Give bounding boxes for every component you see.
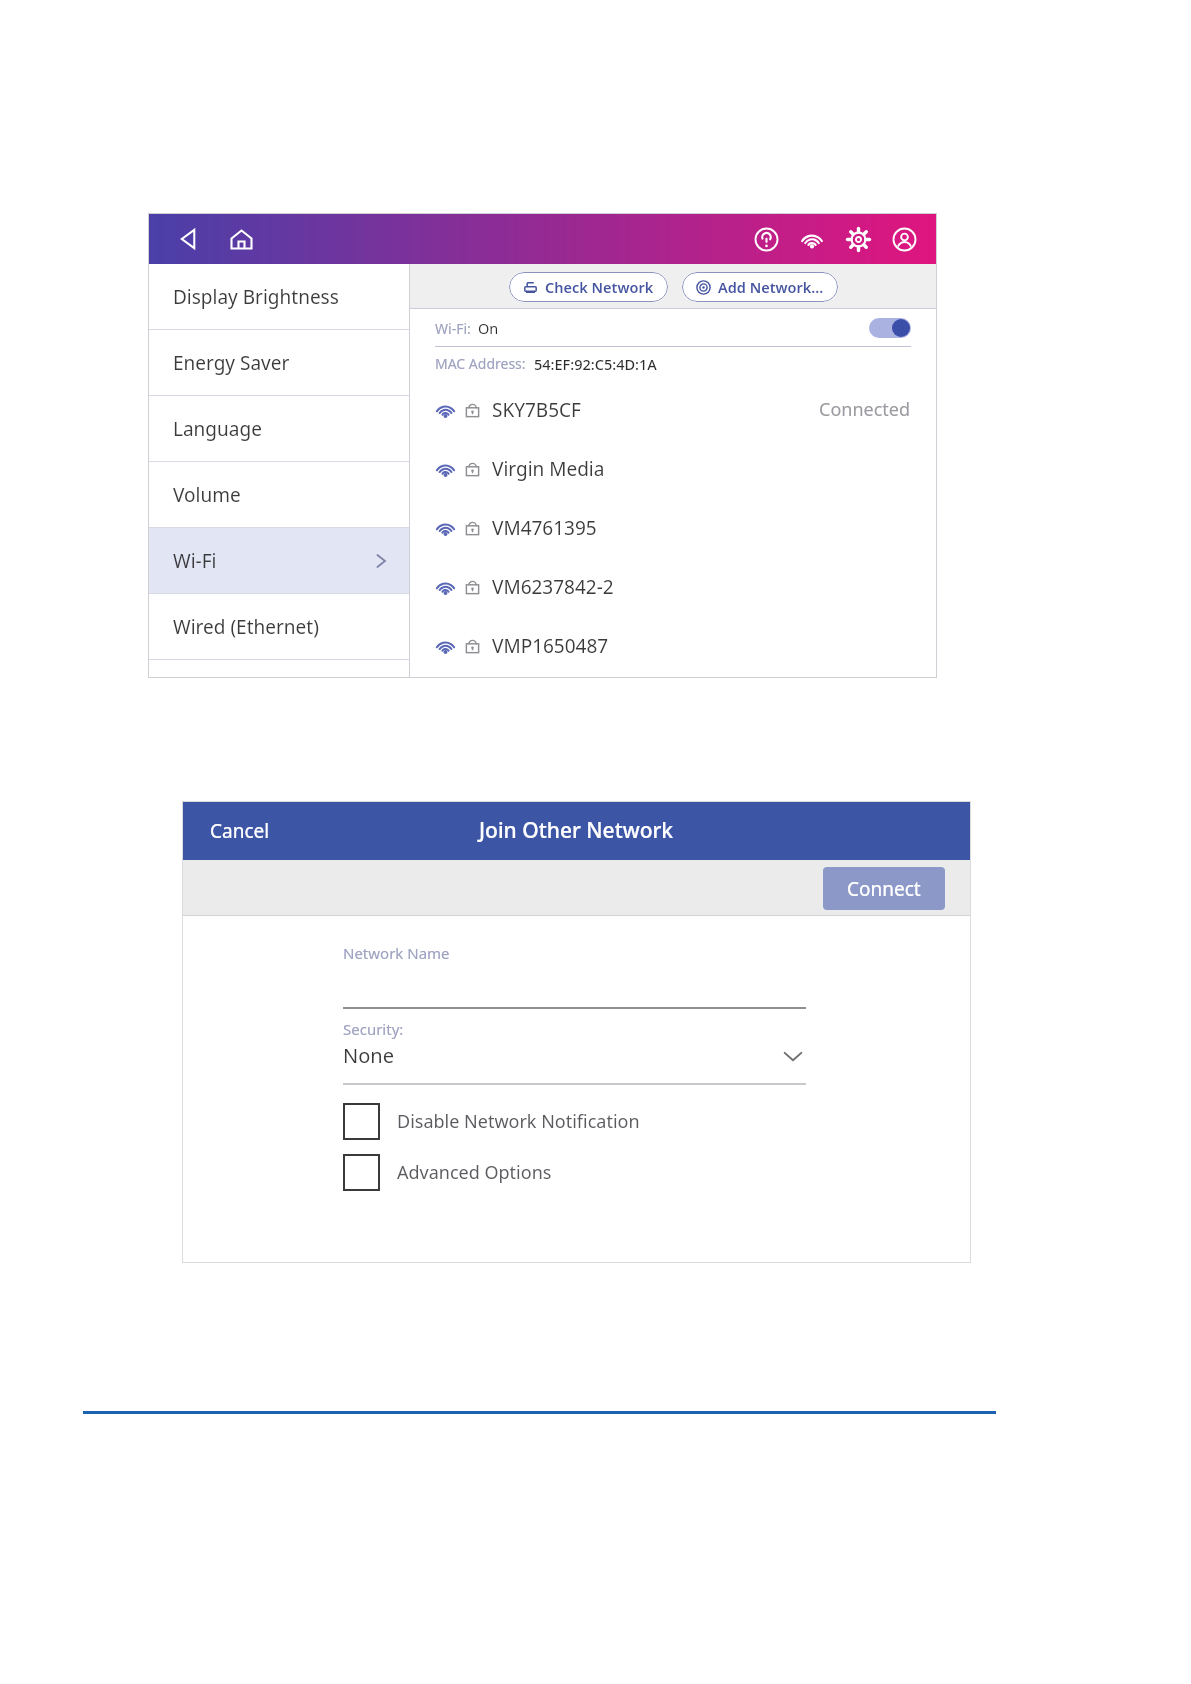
button[interactable]: Home xyxy=(222,220,260,258)
staticText: Add Network... xyxy=(718,277,824,297)
button[interactable]: Volume xyxy=(148,462,409,528)
button[interactable]: Wired (Ethernet) xyxy=(148,594,409,660)
staticText: Check Network xyxy=(545,277,654,297)
button[interactable]: Back xyxy=(170,220,208,258)
button[interactable]: Virgin Media xyxy=(409,439,937,498)
button[interactable]: Account xyxy=(885,220,923,258)
button[interactable]: VM6237842-2 xyxy=(409,557,937,616)
button[interactable]: VMP1650487 xyxy=(409,616,937,675)
button[interactable]: VM4761395 xyxy=(409,498,937,557)
button[interactable]: Cancel xyxy=(182,808,298,854)
staticText: Wi-Fi xyxy=(173,548,217,574)
button[interactable]: None xyxy=(343,1042,806,1069)
button[interactable]: Display Brightness xyxy=(148,264,409,330)
staticText: Connect xyxy=(847,876,921,902)
button[interactable]: Disable Network Notification xyxy=(343,1103,806,1140)
staticText: Cancel xyxy=(210,818,270,844)
button[interactable]: Wi-Fi toggle xyxy=(869,318,911,338)
staticText: VMP1650487 xyxy=(492,633,609,659)
staticText: Volume xyxy=(173,482,241,508)
button[interactable]: Energy Saver xyxy=(148,330,409,396)
staticText: Energy Saver xyxy=(173,350,290,376)
button[interactable]: Wi-Fi status xyxy=(793,220,831,258)
staticText: Language xyxy=(173,416,262,442)
staticText: Disable Network Notification xyxy=(397,1109,640,1134)
button[interactable]: SKY7B5CF xyxy=(409,380,937,439)
button[interactable]: Wi-Fi xyxy=(148,528,409,594)
staticText: Join Other Network xyxy=(479,816,674,845)
staticText: Network Name xyxy=(343,943,450,963)
button[interactable]: Settings xyxy=(839,220,877,258)
staticText: VM4761395 xyxy=(492,515,597,541)
staticText: On xyxy=(478,318,499,338)
button[interactable]: Help xyxy=(747,220,785,258)
button[interactable]: Add Network... xyxy=(682,272,838,302)
staticText: None xyxy=(343,1042,394,1069)
button[interactable]: Language xyxy=(148,396,409,462)
staticText: Connected xyxy=(819,397,911,422)
staticText: 54:EF:92:C5:4D:1A xyxy=(534,354,657,374)
staticText: Wired (Ethernet) xyxy=(173,614,319,640)
staticText: MAC Address: xyxy=(435,354,526,373)
button[interactable]: Connect xyxy=(823,867,945,910)
staticText: Virgin Media xyxy=(492,456,605,482)
button[interactable]: Check Network xyxy=(509,272,668,302)
staticText: Security: xyxy=(343,1019,404,1039)
staticText: Advanced Options xyxy=(397,1160,552,1185)
button[interactable]: Advanced Options xyxy=(343,1154,806,1191)
staticText: VM6237842-2 xyxy=(492,574,614,600)
staticText: SKY7B5CF xyxy=(492,397,581,423)
staticText: Wi-Fi: xyxy=(435,319,471,338)
staticText: Display Brightness xyxy=(173,284,339,310)
